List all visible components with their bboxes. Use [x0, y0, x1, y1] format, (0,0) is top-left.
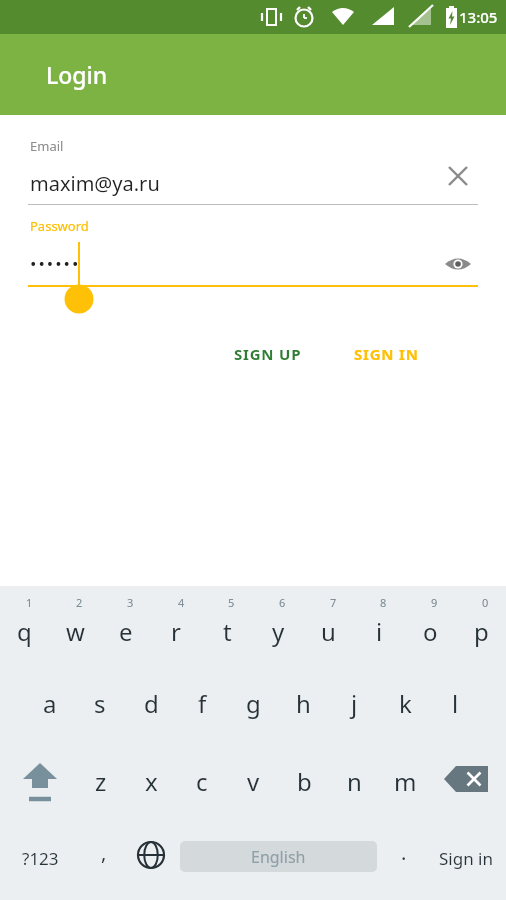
staticText: Password — [30, 217, 89, 235]
button[interactable]: English — [180, 841, 377, 872]
staticText: p — [474, 615, 489, 648]
button[interactable]: Shift — [4, 742, 76, 820]
staticText: z — [95, 765, 107, 798]
button[interactable]: p — [456, 586, 506, 664]
staticText: Email — [30, 137, 64, 155]
staticText: d — [144, 687, 159, 720]
staticText: Sign in — [439, 847, 493, 870]
staticText: SIGN UP — [234, 344, 302, 364]
staticText: f — [198, 687, 207, 720]
button[interactable]: f — [177, 664, 227, 742]
staticText: y — [272, 615, 285, 648]
button[interactable]: o — [405, 586, 455, 664]
button[interactable]: j — [329, 664, 379, 742]
button[interactable]: . — [382, 820, 426, 896]
staticText: k — [399, 687, 412, 720]
button[interactable]: b — [279, 742, 329, 820]
staticText: maxim@ya.ru — [30, 170, 160, 197]
staticText: , — [101, 839, 107, 866]
button[interactable]: ?123 — [0, 820, 80, 896]
staticText: g — [246, 687, 261, 720]
button[interactable]: z — [76, 742, 126, 820]
staticText: x — [145, 765, 158, 798]
button[interactable]: x — [126, 742, 176, 820]
button[interactable]: k — [380, 664, 430, 742]
button[interactable]: c — [177, 742, 227, 820]
staticText: c — [196, 765, 208, 798]
button[interactable]: SIGN IN — [342, 334, 431, 374]
staticText: 1 — [26, 595, 33, 610]
staticText: b — [297, 765, 312, 798]
staticText: •••••• — [30, 252, 81, 275]
button[interactable]: t — [202, 586, 252, 664]
button[interactable]: s — [75, 664, 125, 742]
button[interactable]: e — [101, 586, 151, 664]
button[interactable]: w — [50, 586, 100, 664]
staticText: r — [171, 615, 181, 648]
staticText: 7 — [330, 595, 337, 610]
staticText: v — [247, 765, 260, 798]
button[interactable]: Change language — [128, 820, 174, 896]
button[interactable]: , — [80, 820, 128, 896]
button[interactable]: n — [329, 742, 379, 820]
staticText: j — [351, 687, 358, 720]
staticText: SIGN IN — [354, 344, 419, 364]
button[interactable]: Sign in — [426, 820, 506, 896]
staticText: 0 — [482, 595, 489, 610]
button[interactable]: SIGN UP — [222, 334, 314, 374]
button[interactable]: l — [430, 664, 480, 742]
staticText: ?123 — [22, 847, 59, 870]
button[interactable]: m — [380, 742, 430, 820]
staticText: 8 — [380, 595, 387, 610]
staticText: o — [423, 615, 438, 648]
button[interactable]: h — [278, 664, 328, 742]
staticText: 5 — [228, 595, 235, 610]
button[interactable]: y — [253, 586, 303, 664]
button[interactable]: a — [25, 664, 75, 742]
staticText: s — [94, 687, 106, 720]
staticText: 13:05 — [459, 7, 498, 27]
staticText: 6 — [279, 595, 286, 610]
staticText: i — [376, 615, 383, 648]
staticText: w — [66, 615, 85, 648]
button[interactable]: v — [228, 742, 278, 820]
button[interactable]: Backspace — [432, 742, 502, 820]
staticText: t — [223, 615, 232, 648]
staticText: n — [347, 765, 362, 798]
staticText: m — [394, 765, 417, 798]
button[interactable]: i — [354, 586, 404, 664]
staticText: l — [452, 687, 459, 720]
button[interactable]: q — [0, 586, 49, 664]
staticText: q — [17, 615, 32, 648]
button[interactable]: r — [151, 586, 201, 664]
staticText: English — [251, 846, 306, 868]
staticText: 3 — [127, 595, 134, 610]
staticText: 2 — [76, 595, 83, 610]
staticText: a — [43, 687, 57, 720]
button[interactable]: Show password — [440, 246, 476, 282]
staticText: u — [321, 615, 336, 648]
button[interactable]: Clear email — [440, 158, 476, 194]
button[interactable]: d — [126, 664, 176, 742]
staticText: 4 — [178, 595, 185, 610]
staticText: . — [401, 839, 407, 866]
staticText: 9 — [431, 595, 438, 610]
button[interactable]: g — [228, 664, 278, 742]
staticText: h — [296, 687, 311, 720]
button[interactable]: u — [303, 586, 353, 664]
staticText: e — [119, 615, 133, 648]
staticText: Login — [46, 59, 108, 90]
